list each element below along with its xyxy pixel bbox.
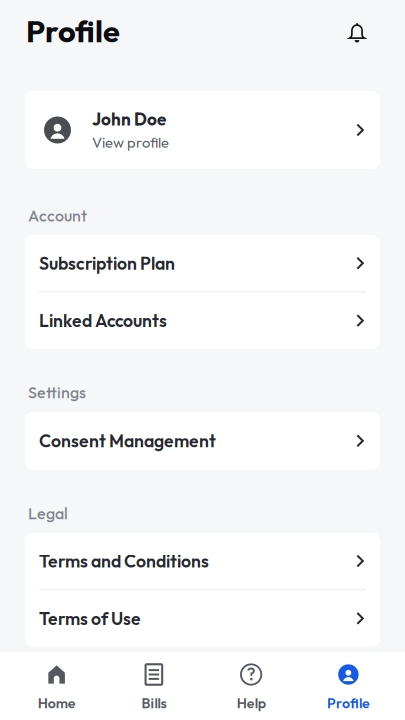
staticText: Terms of Use [39, 607, 141, 629]
staticText: Bills [141, 694, 166, 712]
staticText: Profile [327, 694, 370, 712]
button[interactable]: ? [202, 652, 300, 720]
staticText: Subscription Plan [39, 252, 175, 274]
staticText: Profile [26, 12, 120, 50]
button[interactable]: Subscription Plan [25, 235, 380, 291]
staticText: Account [28, 205, 87, 226]
button[interactable]: Linked Accounts [25, 292, 380, 349]
staticText: Consent Management [39, 430, 216, 452]
button[interactable]: Profile [300, 652, 397, 720]
button[interactable]: John Doe [25, 91, 380, 169]
staticText: Legal [28, 503, 68, 523]
button[interactable]: Terms of Use [25, 590, 380, 647]
button[interactable]: Notifications [338, 12, 376, 50]
button[interactable]: Consent Management [25, 412, 380, 470]
button[interactable]: Home [8, 652, 105, 720]
staticText: View profile [92, 133, 169, 151]
button[interactable]: Bills [105, 652, 202, 720]
button[interactable]: Terms and Conditions [25, 533, 380, 589]
staticText: Help [237, 694, 266, 712]
staticText: Settings [28, 382, 86, 402]
staticText: ? [247, 663, 256, 685]
staticText: Linked Accounts [39, 309, 167, 332]
staticText: John Doe [92, 108, 166, 130]
staticText: Terms and Conditions [39, 550, 209, 572]
staticText: Home [38, 694, 76, 712]
